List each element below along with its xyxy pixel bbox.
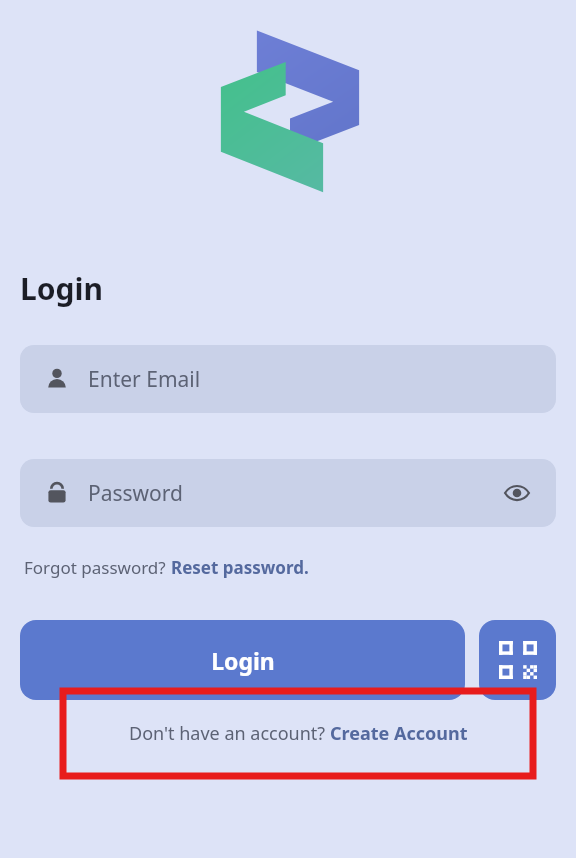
staticText: Login xyxy=(20,268,103,309)
staticText: Forgot password? xyxy=(24,556,171,579)
staticText: Password xyxy=(88,479,183,508)
staticText: Enter Email xyxy=(88,365,201,394)
staticText: Create Account xyxy=(330,721,468,746)
button[interactable]: Login xyxy=(20,620,465,700)
button[interactable]: Reset password. xyxy=(171,556,309,579)
button[interactable]: Scan QR code xyxy=(479,620,556,700)
button[interactable]: Show password xyxy=(500,476,534,510)
staticText: Reset password. xyxy=(171,556,309,579)
staticText: Don't have an account? xyxy=(129,721,330,746)
button[interactable]: Enter Email xyxy=(20,345,556,413)
button[interactable]: Password xyxy=(20,459,556,527)
staticText: Login xyxy=(211,645,275,676)
button[interactable]: Don't have an account? xyxy=(63,691,533,776)
